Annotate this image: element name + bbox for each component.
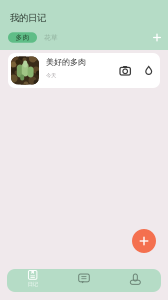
button[interactable]: Messages — [58, 269, 110, 292]
staticText: 今天 — [46, 72, 56, 79]
button[interactable]: Profile — [110, 269, 161, 292]
button[interactable]: 美好的多肉 — [8, 53, 160, 88]
staticText: 美好的多肉 — [46, 57, 86, 67]
button[interactable]: 多肉 — [8, 32, 37, 43]
button[interactable]: New entry — [132, 229, 156, 253]
staticText: 花草 — [44, 33, 58, 42]
button[interactable]: 日记 — [7, 269, 58, 292]
button[interactable]: Add category — [150, 30, 164, 44]
staticText: 多肉 — [15, 33, 29, 42]
staticText: 我的日记 — [10, 12, 46, 24]
button[interactable]: 花草 — [37, 32, 65, 43]
staticText: 日记 — [28, 281, 38, 288]
